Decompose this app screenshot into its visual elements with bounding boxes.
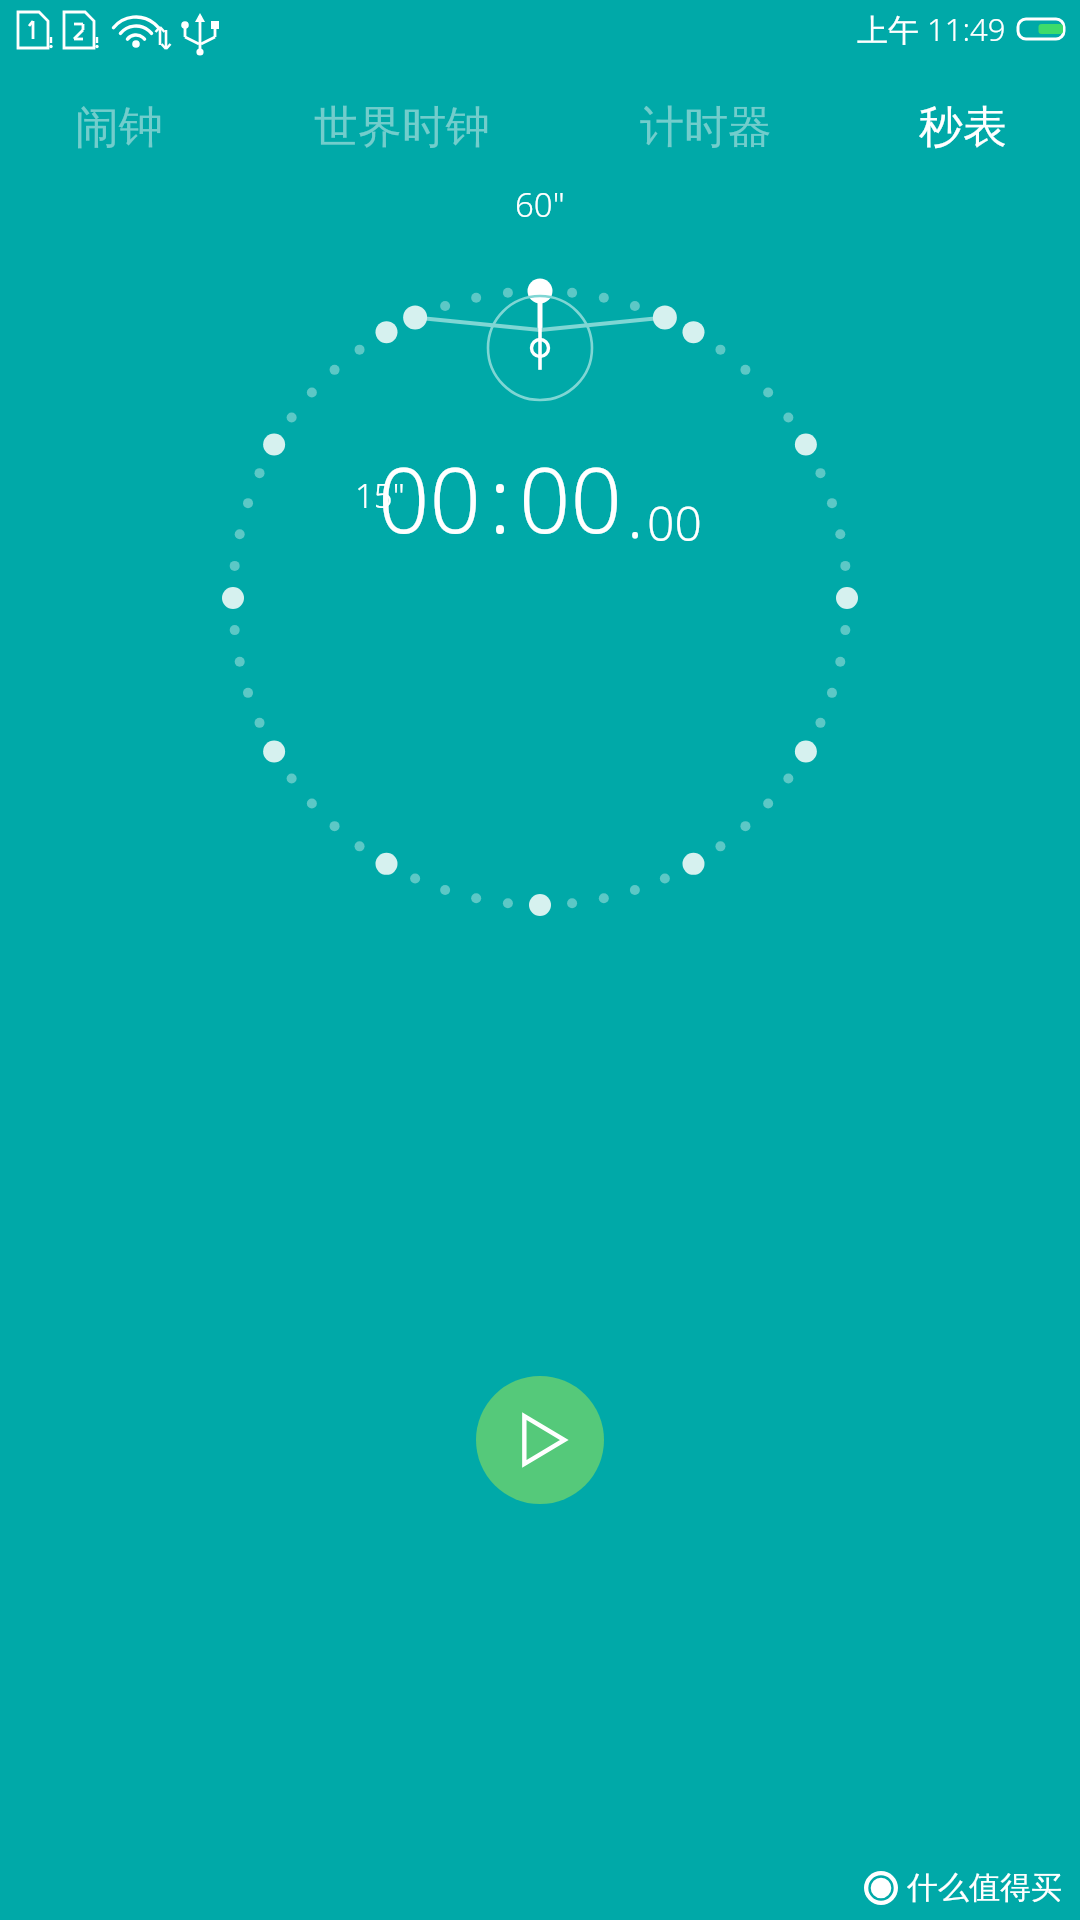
- staticText: 60": [515, 182, 565, 227]
- staticText: 世界时钟: [314, 100, 490, 155]
- staticText: .: [627, 467, 644, 557]
- staticText: 00: [647, 490, 702, 555]
- staticText: 秒表: [919, 100, 1007, 155]
- staticText: 闹钟: [75, 100, 163, 155]
- button[interactable]: 闹钟: [0, 88, 238, 166]
- button[interactable]: 计时器: [566, 88, 845, 166]
- staticText: 上午 11:49: [857, 8, 1006, 50]
- staticText: 计时器: [640, 100, 772, 155]
- button[interactable]: 秒表: [845, 88, 1080, 166]
- staticText: 15": [355, 473, 405, 518]
- staticText: 什么值得买: [907, 1868, 1062, 1907]
- staticText: 00: [519, 437, 622, 560]
- button[interactable]: 世界时钟: [238, 88, 566, 166]
- button[interactable]: Start stopwatch: [476, 1376, 604, 1504]
- staticText: :: [489, 437, 511, 560]
- staticText: 00: [378, 437, 481, 560]
